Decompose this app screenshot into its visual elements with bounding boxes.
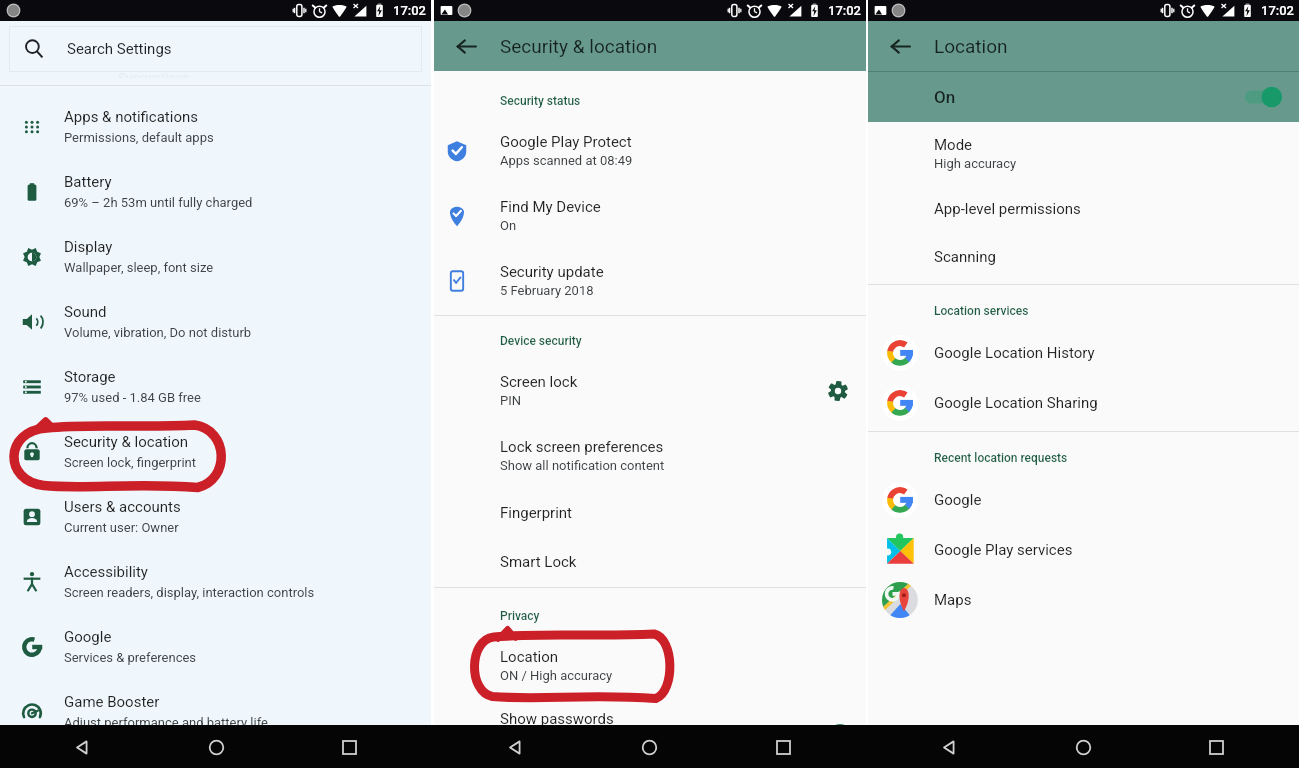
staticText: Security status [500,94,581,108]
staticText: Screen lock [500,373,578,391]
staticText: Location services [934,304,1029,318]
staticText: Google [64,628,112,646]
button[interactable]: Navigate up [446,26,486,66]
button[interactable]: Find My Device [434,183,866,248]
staticText: ON / High accuracy [500,668,613,683]
button[interactable]: Storage [0,354,431,419]
staticText: Device security [500,334,582,348]
staticText: On [934,87,956,107]
button[interactable]: App-level permissions [868,185,1299,233]
staticText: Recent location requests [934,451,1068,465]
button[interactable]: Scanning [868,233,1299,281]
button[interactable]: Display [0,224,431,289]
staticText: Apps & notifications [64,108,198,126]
button[interactable]: Users & accounts [0,484,431,549]
staticText: Services & preferences [64,650,197,665]
button[interactable]: Back [62,727,102,767]
button[interactable]: Google Location Sharing [868,378,1299,428]
staticText: Screen readers, display, interaction con… [64,585,315,600]
staticText: Battery [64,173,112,191]
staticText: Show passwords [500,710,614,728]
staticText: PIN [500,393,522,408]
button[interactable]: Show passwords [434,698,866,740]
staticText: Security & location [64,433,189,451]
staticText: Game Booster [64,693,160,711]
staticText: 69% – 2h 53m until fully charged [64,195,253,210]
button[interactable]: Home [629,727,669,767]
button[interactable]: Search Settings [10,27,421,71]
staticText: Lock screen preferences [500,438,664,456]
button[interactable]: Mode [868,122,1299,185]
button[interactable]: Navigate up [880,26,920,66]
button[interactable]: Security update [434,248,866,313]
button[interactable]: Google [0,614,431,679]
button[interactable]: Back [929,727,969,767]
staticText: Smart Lock [500,553,577,571]
button[interactable]: Lock screen preferences [434,423,866,488]
button[interactable]: Home [1063,727,1103,767]
staticText: Volume, vibration, Do not disturb [64,325,252,340]
button[interactable]: Battery [0,159,431,224]
button[interactable]: Screen lock [434,358,866,423]
staticText: Scanning [934,248,996,266]
staticText: Screen lock, fingerprint [64,455,197,470]
button[interactable]: Maps [868,575,1299,625]
staticText: Find My Device [500,198,601,216]
staticText: 5 February 2018 [500,283,594,298]
staticText: Accessibility [64,563,148,581]
staticText: Google Play Protect [500,133,632,151]
staticText: Adjust performance and battery life [64,715,268,730]
staticText: Google Location History [934,344,1095,362]
button[interactable]: Home [196,727,236,767]
button[interactable]: Screen lock settings [821,374,855,408]
staticText: Location [500,648,559,666]
staticText: Sound [64,303,107,321]
staticText: Apps scanned at 08:49 [500,153,633,168]
button[interactable]: Google Location History [868,328,1299,378]
staticText: Security update [500,263,604,281]
button[interactable]: Accessibility [0,549,431,614]
staticText: Show all notification content [500,458,665,473]
staticText: 97% used - 1.84 GB free [64,390,201,405]
button[interactable]: Fingerprint [434,488,866,537]
button[interactable]: Google [868,475,1299,525]
staticText: Location [934,35,1008,57]
button[interactable]: Recents [763,727,803,767]
staticText: 17:02 [828,3,861,18]
staticText: Display [64,238,113,256]
button[interactable]: Smart Lock [434,537,866,586]
button[interactable]: Show passwords toggle [825,720,855,750]
staticText: Current user: Owner [64,520,179,535]
staticText: Google [934,491,982,509]
button[interactable]: Recents [1196,727,1236,767]
staticText: On [500,218,517,233]
button[interactable]: On [868,72,1299,122]
staticText: Privacy [500,609,540,623]
staticText: 17:02 [1261,3,1294,18]
button[interactable]: Google Play services [868,525,1299,575]
staticText: Security & location [500,35,658,57]
staticText: High accuracy [934,156,1017,171]
staticText: Users & accounts [64,498,181,516]
button[interactable]: Security & location [0,419,431,484]
button[interactable]: Sound [0,289,431,354]
staticText: Suggestions [118,70,190,78]
button[interactable]: Back [495,727,535,767]
button[interactable]: Location [434,633,866,698]
staticText: Google Location Sharing [934,394,1098,412]
staticText: Permissions, default apps [64,130,214,145]
staticText: Search Settings [67,40,172,58]
staticText: Maps [934,591,972,609]
staticText: 17:02 [393,3,426,18]
staticText: Google Play services [934,541,1073,559]
staticText: App-level permissions [934,200,1081,218]
button[interactable]: Google Play Protect [434,118,866,183]
staticText: Wallpaper, sleep, font size [64,260,214,275]
staticText: Fingerprint [500,504,573,522]
button[interactable]: Recents [329,727,369,767]
button[interactable]: Apps & notifications [0,94,431,159]
staticText: Storage [64,368,116,386]
staticText: Mode [934,136,973,154]
button[interactable]: Game Booster [0,679,431,744]
